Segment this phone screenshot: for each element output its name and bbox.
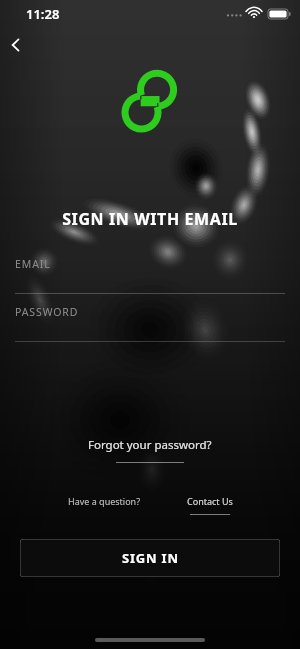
button[interactable]: SIGN IN [20, 539, 280, 577]
staticText: SIGN IN WITH EMAIL [0, 208, 300, 230]
staticText: Contact Us [187, 495, 233, 507]
staticText: PASSWORD [15, 305, 79, 319]
button[interactable]: Have a question? [68, 493, 141, 509]
button[interactable]: Contact Us [187, 493, 233, 517]
staticText: EMAIL [15, 257, 51, 271]
button[interactable]: PASSWORD [0, 305, 300, 342]
staticText: Forgot your password? [88, 437, 212, 453]
button[interactable]: Back [0, 28, 44, 62]
staticText: SIGN IN [122, 549, 179, 567]
staticText: 11:28 [26, 5, 60, 23]
button[interactable]: EMAIL [0, 257, 300, 294]
button[interactable]: Forgot your password? [78, 435, 222, 465]
